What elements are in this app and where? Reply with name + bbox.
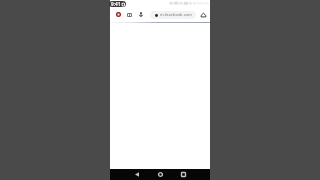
button[interactable]: Voice search (135, 9, 146, 20)
button[interactable]: Home (155, 169, 165, 180)
button[interactable]: Recent apps (178, 169, 188, 180)
button[interactable]: m.facebook.com (150, 11, 196, 19)
button[interactable]: Back (132, 169, 142, 180)
staticText: 9:41 (111, 1, 121, 7)
button[interactable]: Home (198, 9, 209, 20)
button[interactable]: Stop recording (113, 9, 124, 20)
button[interactable]: Switch tabs (124, 9, 135, 20)
staticText: m.facebook.com (160, 12, 192, 18)
